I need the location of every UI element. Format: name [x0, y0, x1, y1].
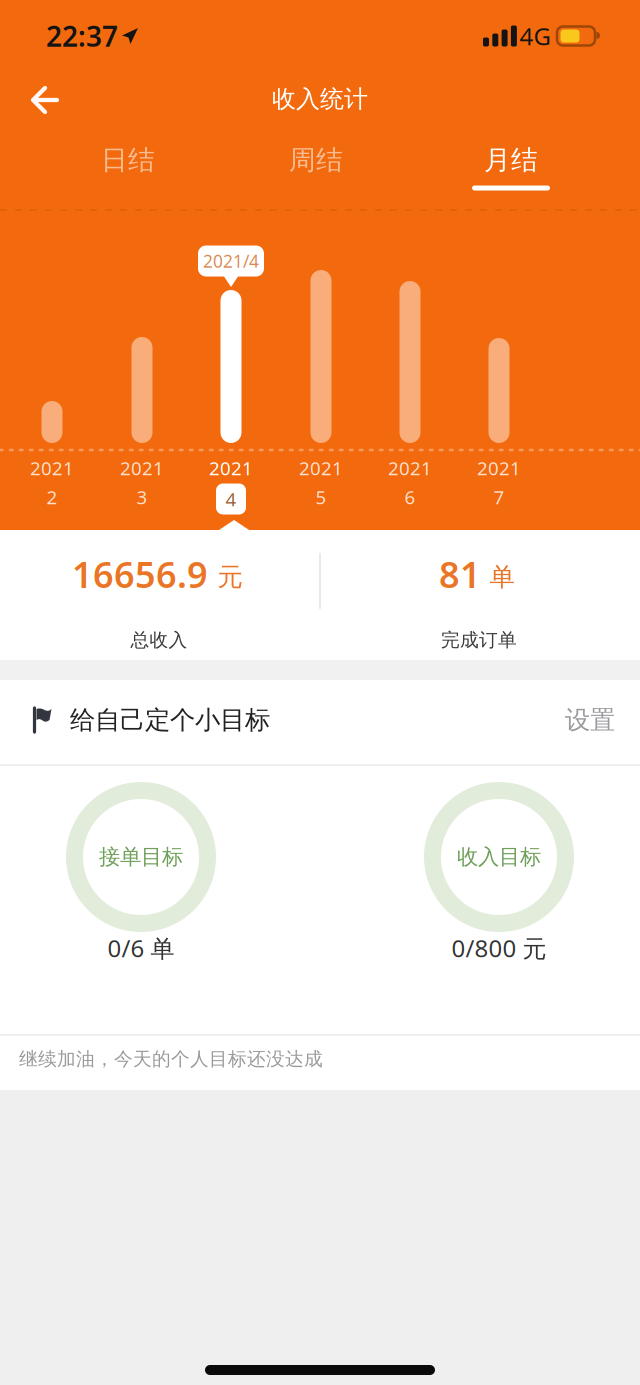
staticText: 月结 — [484, 144, 538, 176]
staticText: 给自己定个小目标 — [70, 704, 270, 735]
staticText: 2021 — [477, 456, 521, 480]
staticText: 7 — [493, 485, 504, 509]
button[interactable]: 日结 — [53, 132, 203, 188]
staticText: 3 — [136, 485, 147, 509]
staticText: 81 — [439, 550, 481, 598]
staticText: 接单目标 — [99, 844, 183, 870]
staticText: 2021 — [209, 456, 253, 480]
button[interactable]: 2021/4 — [220, 290, 241, 443]
staticText: 周结 — [289, 144, 343, 176]
button[interactable]: 2021/5 — [310, 270, 331, 443]
staticText: 2021 — [30, 456, 74, 480]
staticText: 2021 — [120, 456, 164, 480]
button[interactable]: 2021/7 — [488, 338, 509, 443]
staticText: 4 — [225, 487, 236, 511]
staticText: 16656.9 — [72, 550, 208, 598]
button[interactable]: Back — [17, 75, 73, 125]
button[interactable]: 2021/2 — [41, 401, 62, 443]
staticText: 0/6 单 — [107, 932, 174, 964]
button[interactable]: 设置 — [545, 689, 635, 751]
staticText: 5 — [315, 485, 326, 509]
staticText: 元 — [217, 561, 242, 592]
button[interactable]: 2021/3 — [131, 337, 152, 443]
staticText: 2021 — [299, 456, 343, 480]
button[interactable]: 2021/6 — [399, 281, 420, 443]
staticText: 0/800 元 — [451, 932, 546, 964]
staticText: 单 — [489, 561, 514, 592]
staticText: 设置 — [565, 704, 615, 735]
staticText: 继续加油，今天的个人目标还没达成 — [19, 1047, 323, 1070]
staticText: 22:37 — [46, 17, 118, 55]
staticText: 总收入 — [130, 628, 187, 651]
staticText: 2021/4 — [203, 249, 259, 272]
staticText: 完成订单 — [441, 628, 517, 651]
staticText: 2021 — [388, 456, 432, 480]
staticText: 2 — [46, 485, 57, 509]
staticText: 日结 — [101, 144, 155, 176]
staticText: 6 — [404, 485, 415, 509]
staticText: 4G — [519, 20, 550, 52]
button[interactable]: 月结 — [436, 132, 586, 188]
button[interactable]: 周结 — [241, 132, 391, 188]
staticText: 收入目标 — [457, 844, 541, 870]
staticText: 收入统计 — [272, 84, 368, 114]
